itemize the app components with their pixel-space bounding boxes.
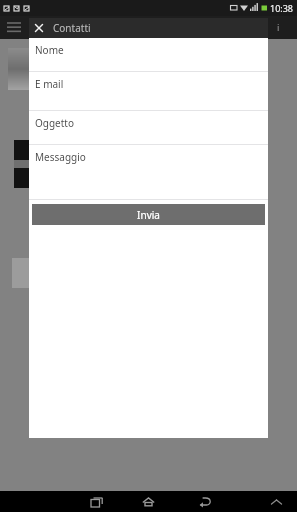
staticText: 10:38 bbox=[270, 2, 294, 14]
button[interactable]: Expand bbox=[262, 491, 290, 512]
button[interactable]: Oggetto bbox=[29, 111, 268, 144]
staticText: Oggetto bbox=[35, 116, 75, 130]
button[interactable]: E mail bbox=[29, 72, 268, 110]
staticText: E mail bbox=[35, 77, 64, 91]
button[interactable]: Home bbox=[133, 491, 163, 512]
button[interactable]: Recents bbox=[82, 491, 112, 512]
staticText: i bbox=[277, 21, 280, 33]
button[interactable]: Back bbox=[190, 491, 220, 512]
button[interactable]: Nome bbox=[29, 38, 268, 71]
staticText: Nome bbox=[35, 43, 64, 57]
staticText: Contatti bbox=[53, 21, 91, 35]
staticText: Invia bbox=[137, 208, 160, 222]
button[interactable]: Close bbox=[29, 18, 268, 38]
button[interactable]: Messaggio bbox=[29, 145, 268, 199]
button[interactable]: Invia bbox=[32, 204, 265, 225]
button[interactable]: Close bbox=[29, 18, 49, 38]
staticText: Messaggio bbox=[35, 150, 86, 164]
